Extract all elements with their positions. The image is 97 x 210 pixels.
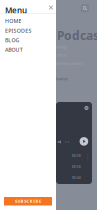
button[interactable]: ABOUT — [0, 45, 56, 55]
staticText: ABOUT — [5, 46, 23, 53]
staticText: All Episodes — [45, 76, 68, 81]
staticText: We love technology, — [34, 44, 68, 49]
button[interactable]: 00:50 — [56, 152, 92, 160]
button[interactable]: HOME — [0, 16, 56, 26]
button[interactable]: Search — [81, 4, 89, 12]
staticText: BLOG — [5, 37, 20, 44]
staticText: Tech Podcast — [27, 27, 97, 43]
button[interactable]: Close menu — [46, 2, 56, 12]
button[interactable]: 00:50 — [56, 163, 92, 171]
staticText: join us as we blend — [34, 52, 66, 58]
staticText: 00:50 — [72, 165, 81, 169]
button[interactable]: 00:34 — [56, 174, 92, 182]
staticText: HOME — [5, 17, 22, 25]
staticText: 00:34 — [72, 176, 81, 180]
staticText: 00:50 — [72, 154, 81, 158]
staticText: EPISODES — [5, 27, 31, 34]
staticText: the most unique tech podcast — [34, 61, 83, 66]
button[interactable]: SUBSCRIBE — [4, 197, 52, 205]
button[interactable]: EPISODES — [0, 26, 56, 35]
button[interactable]: BLOG — [0, 35, 56, 45]
staticText: SUBSCRIBE — [15, 199, 41, 204]
staticText: Menu — [5, 5, 27, 16]
button[interactable]: Play — [80, 137, 88, 146]
button[interactable]: All Episodes — [44, 75, 69, 82]
